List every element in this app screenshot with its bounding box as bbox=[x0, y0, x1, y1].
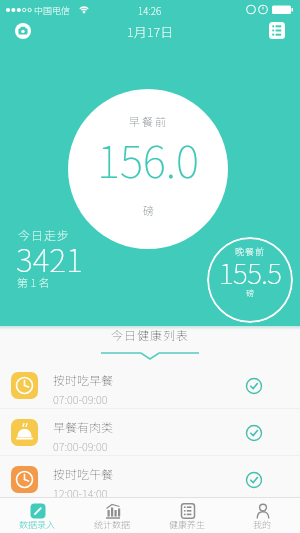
staticText: 今日健康列表 bbox=[111, 326, 190, 343]
staticText: 早餐有肉类 bbox=[53, 418, 114, 435]
staticText: 按时吃午餐 bbox=[53, 465, 114, 482]
staticText: 07:00-09:00 bbox=[53, 391, 108, 407]
staticText: 按时吃早餐 bbox=[53, 371, 114, 388]
staticText: 统计数据 bbox=[94, 518, 131, 531]
staticText: 数据录入 bbox=[19, 518, 56, 531]
button[interactable] bbox=[246, 472, 262, 488]
button[interactable]: 按时吃午餐 bbox=[0, 456, 300, 503]
staticText: 磅 bbox=[143, 202, 154, 218]
staticText: 156.0 bbox=[97, 127, 199, 191]
button[interactable]: 早餐有肉类 bbox=[0, 409, 300, 456]
staticText: 中国电信 bbox=[34, 4, 71, 17]
staticText: 今日走步 bbox=[18, 226, 71, 243]
staticText: 晚餐前 bbox=[235, 245, 266, 258]
staticText: 07:00-09:00 bbox=[53, 438, 108, 454]
staticText: 早餐前 bbox=[129, 113, 168, 129]
staticText: 155.5 bbox=[219, 252, 282, 293]
button[interactable]: 早餐前 bbox=[68, 89, 228, 249]
staticText: 我的 bbox=[253, 518, 272, 531]
staticText: 12:00-14:00 bbox=[53, 485, 108, 501]
button[interactable]: 健康养生 bbox=[150, 497, 225, 533]
staticText: 磅 bbox=[246, 287, 254, 299]
button[interactable]: 晚餐前 bbox=[207, 237, 293, 323]
button[interactable]: 数据录入 bbox=[0, 497, 75, 533]
button[interactable]: 我的 bbox=[225, 497, 300, 533]
staticText: 第 1 名 bbox=[17, 274, 50, 290]
button[interactable]: 按时吃早餐 bbox=[0, 362, 300, 409]
staticText: 3421 bbox=[16, 235, 83, 281]
button[interactable] bbox=[246, 425, 262, 441]
staticText: 14:26 bbox=[138, 3, 162, 17]
staticText: 健康养生 bbox=[169, 518, 206, 531]
button[interactable]: 统计数据 bbox=[75, 497, 150, 533]
button[interactable] bbox=[246, 378, 262, 394]
button[interactable] bbox=[269, 22, 285, 39]
staticText: 1月17日 bbox=[127, 22, 174, 41]
button[interactable] bbox=[15, 23, 31, 39]
